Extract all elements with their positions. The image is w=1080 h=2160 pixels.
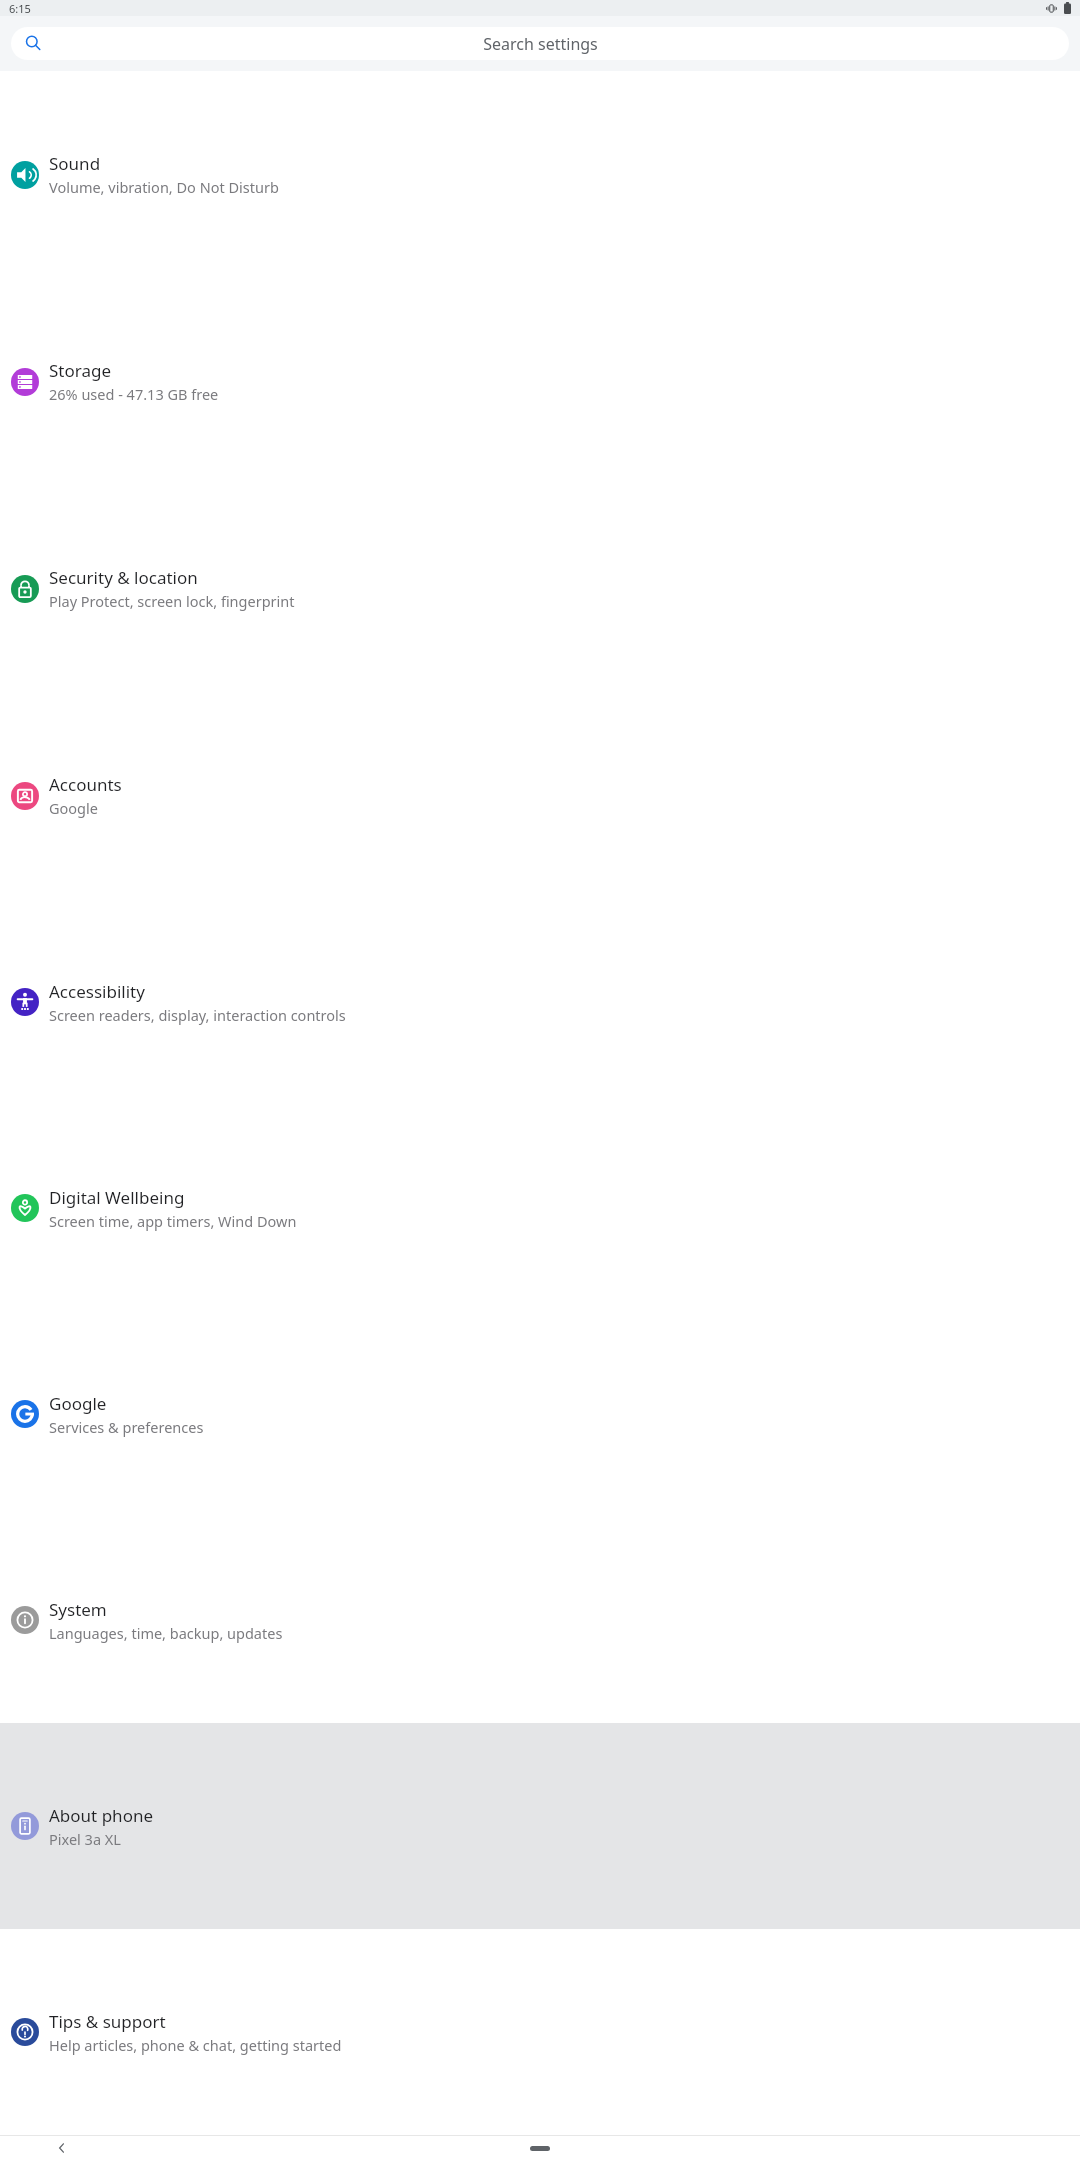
staticText: Screen readers, display, interaction con… (49, 1005, 346, 1025)
staticText: Volume, vibration, Do Not Disturb (49, 177, 279, 197)
staticText: 6:15 (9, 1, 31, 16)
button[interactable]: Back (55, 2141, 69, 2155)
staticText: Services & preferences (49, 1417, 204, 1437)
button[interactable]: Security & location (0, 485, 1080, 692)
staticText: About phone (49, 1804, 154, 1827)
staticText: Accessibility (49, 980, 145, 1003)
button[interactable]: Google (0, 1311, 1080, 1517)
button[interactable]: System (0, 1517, 1080, 1723)
staticText: Storage (49, 359, 112, 382)
staticText: Google (49, 798, 98, 818)
staticText: Play Protect, screen lock, fingerprint (49, 591, 295, 611)
staticText: Security & location (49, 566, 198, 589)
button[interactable]: Storage (0, 278, 1080, 485)
staticText: Search settings (483, 33, 598, 55)
other: Search (25, 35, 42, 52)
button[interactable]: Accounts (0, 692, 1080, 899)
staticText: Sound (49, 152, 101, 175)
staticText: 26% used - 47.13 GB free (49, 384, 219, 404)
staticText: Accounts (49, 773, 122, 796)
staticText: Pixel 3a XL (49, 1829, 121, 1849)
button[interactable]: Tips & support (0, 1929, 1080, 2135)
button[interactable]: Accessibility (0, 899, 1080, 1105)
staticText: Screen time, app timers, Wind Down (49, 1211, 297, 1231)
button[interactable]: Sound (0, 71, 1080, 278)
button[interactable]: Home (530, 2146, 550, 2151)
staticText: Google (49, 1392, 107, 1415)
staticText: Digital Wellbeing (49, 1186, 185, 1209)
staticText: Languages, time, backup, updates (49, 1623, 283, 1643)
staticText: System (49, 1598, 107, 1621)
staticText: Tips & support (49, 2010, 166, 2033)
button[interactable]: Digital Wellbeing (0, 1105, 1080, 1311)
button[interactable]: Search (11, 27, 1069, 60)
button[interactable]: About phone (0, 1723, 1080, 1929)
staticText: Help articles, phone & chat, getting sta… (49, 2035, 342, 2055)
